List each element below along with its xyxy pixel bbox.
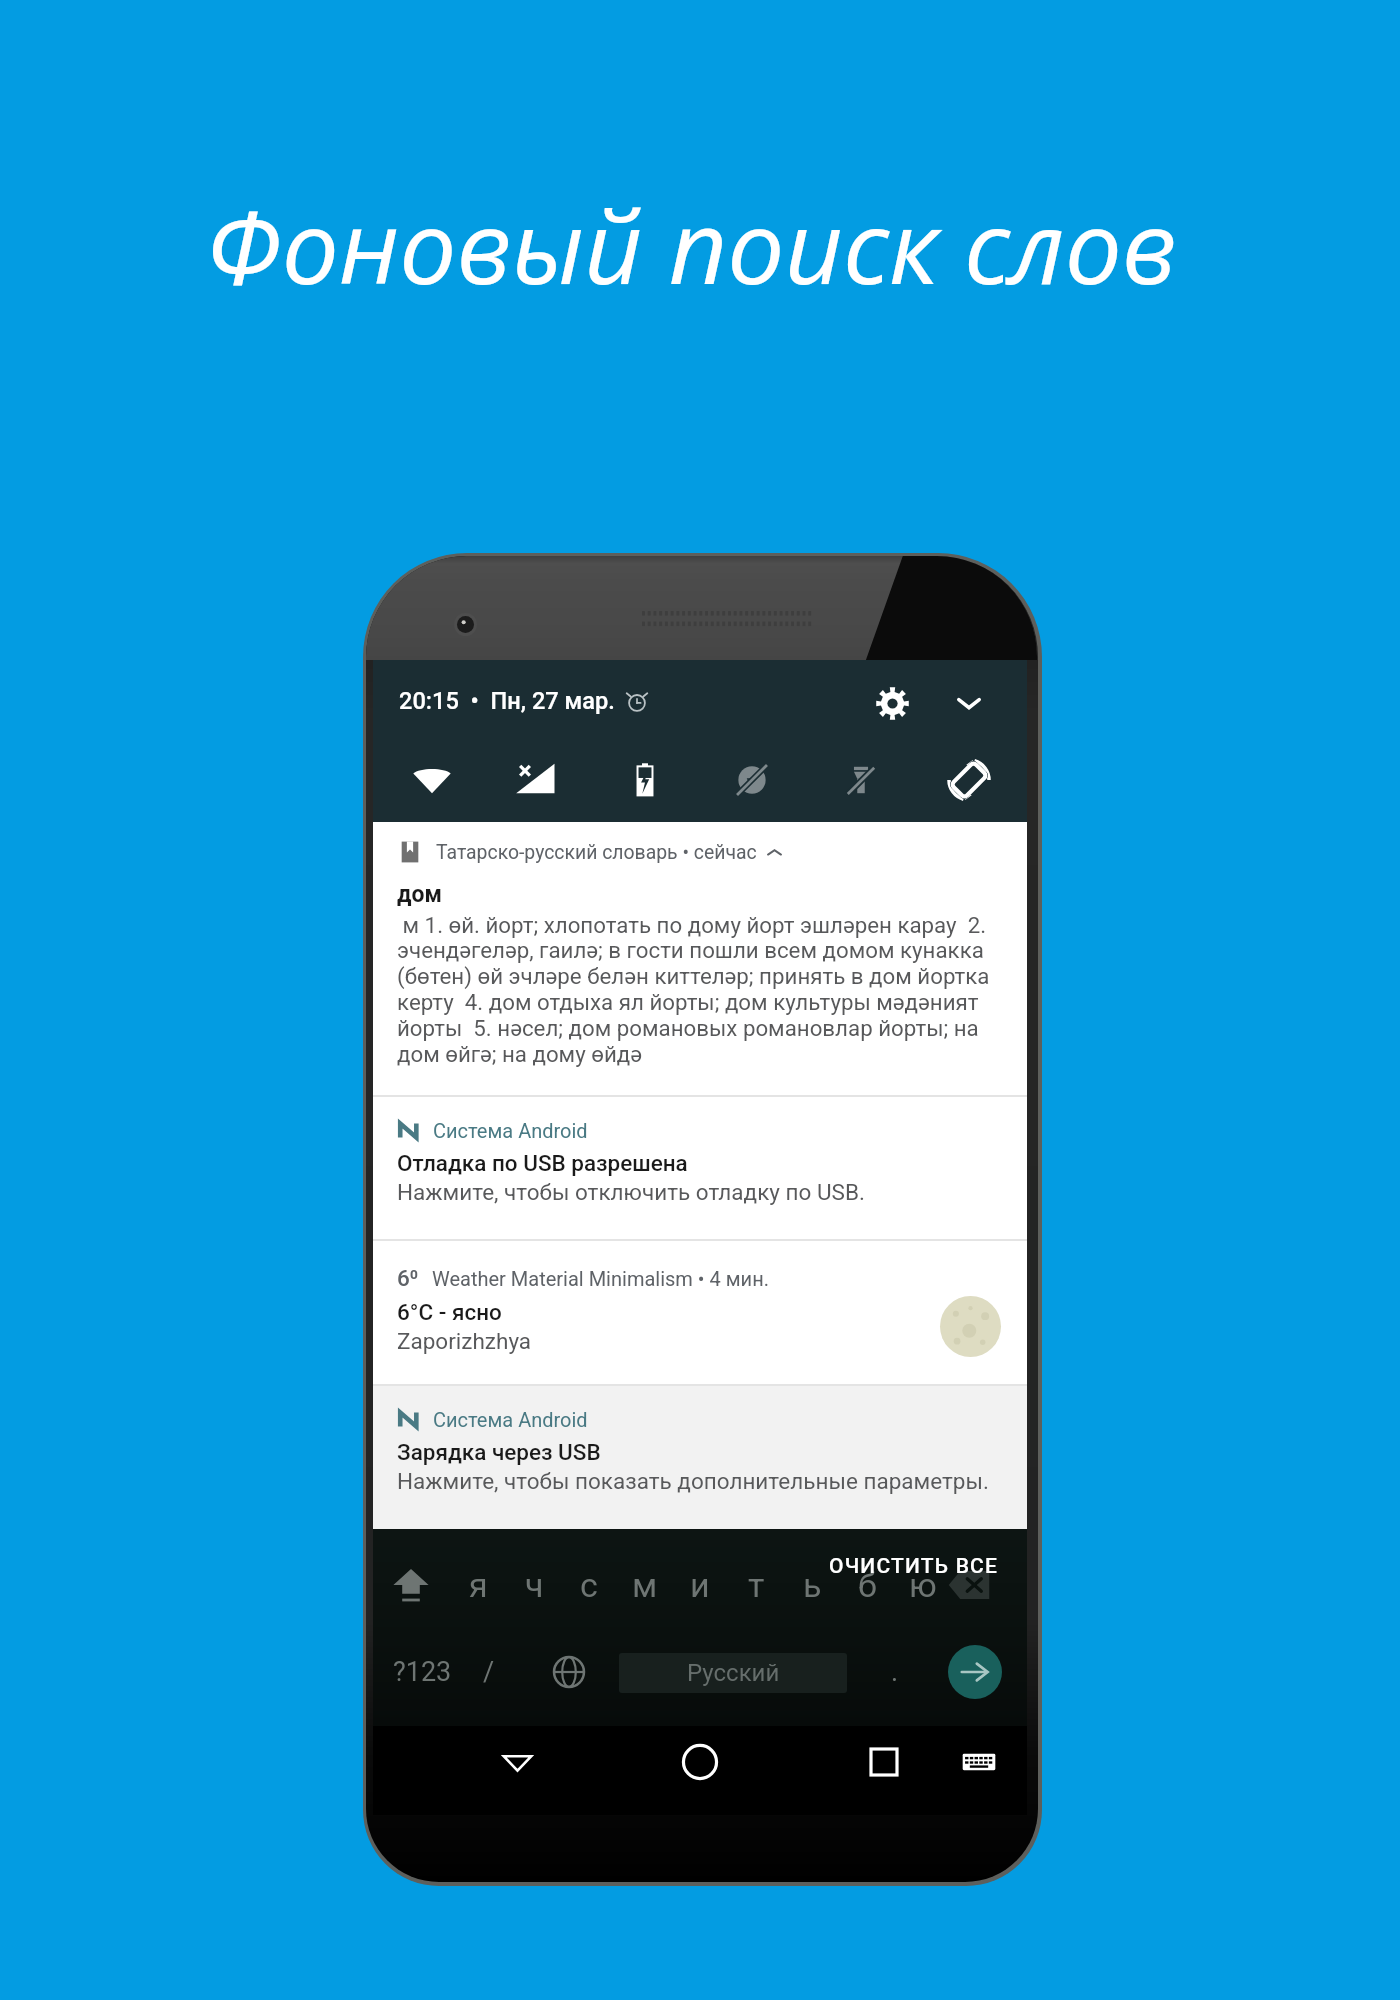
button[interactable]: Do not disturb [724, 752, 780, 808]
staticText: с [580, 1565, 598, 1605]
button[interactable]: ю [897, 1559, 949, 1611]
staticText: Zaporizhzhya [397, 1328, 532, 1354]
button[interactable]: ь [786, 1559, 838, 1611]
button[interactable]: с [563, 1559, 615, 1611]
staticText: 20:15 • Пн, 27 мар. [399, 687, 615, 715]
staticText: . [891, 1656, 899, 1688]
button[interactable]: Keyboard [951, 1734, 1007, 1790]
button[interactable]: и [674, 1559, 726, 1611]
button[interactable]: Back [487, 1732, 547, 1792]
button[interactable]: м [619, 1559, 671, 1611]
staticText: Нажмите, чтобы отключить отладку по USB. [397, 1179, 865, 1205]
staticText: Отладка по USB разрешена [397, 1150, 688, 1176]
staticText: м 1. өй. йорт; хлопотать по дому йорт эш… [397, 912, 1003, 1068]
button[interactable]: Enter [948, 1645, 1002, 1699]
button[interactable]: Backspace [943, 1559, 995, 1611]
button[interactable]: Wi-Fi [404, 752, 460, 808]
button[interactable]: ?123 [387, 1647, 457, 1697]
staticText: Зарядка через USB [397, 1439, 601, 1465]
staticText: Система Android [433, 1119, 588, 1142]
button[interactable]: Система Android [373, 1097, 1027, 1239]
button[interactable]: ОЧИСТИТЬ ВСЕ [813, 1549, 999, 1583]
button[interactable]: Татарско-русский словарь • сейчас [373, 822, 1027, 1095]
button[interactable]: Auto rotate [941, 752, 997, 808]
staticText: Русский [687, 1659, 780, 1687]
button[interactable]: я [452, 1559, 504, 1611]
staticText: ОЧИСТИТЬ ВСЕ [829, 1554, 999, 1579]
button[interactable]: Система Android [373, 1386, 1027, 1529]
button[interactable]: Русский [619, 1653, 847, 1693]
staticText: дом [397, 881, 442, 908]
button[interactable]: Battery [617, 752, 673, 808]
button[interactable]: 6⁰ [373, 1241, 1027, 1384]
button[interactable]: Switch language [544, 1647, 594, 1697]
button[interactable]: б [841, 1559, 893, 1611]
button[interactable]: ч [508, 1559, 560, 1611]
staticText: Фоновый поиск слов [0, 176, 1391, 314]
staticText: 6°C - ясно [397, 1299, 502, 1325]
staticText: м [632, 1565, 658, 1605]
staticText: ?123 [393, 1656, 452, 1688]
staticText: т [748, 1565, 765, 1605]
staticText: и [690, 1565, 710, 1605]
button[interactable]: Recents [854, 1732, 914, 1792]
button[interactable]: Collapse [947, 681, 991, 725]
button[interactable]: Shift [385, 1559, 437, 1611]
staticText: Нажмите, чтобы показать дополнительные п… [397, 1468, 989, 1494]
button[interactable]: / [467, 1647, 511, 1697]
button[interactable]: Mobile signal [508, 752, 564, 808]
staticText: ч [525, 1565, 544, 1605]
button[interactable]: Home [670, 1732, 730, 1792]
staticText: Татарско-русский словарь • сейчас [436, 841, 757, 864]
staticText: Система Android [433, 1408, 588, 1431]
button[interactable]: Settings [870, 681, 914, 725]
staticText: б [858, 1565, 877, 1605]
staticText: / [483, 1656, 495, 1688]
staticText: я [469, 1565, 488, 1605]
button[interactable]: т [730, 1559, 782, 1611]
staticText: 6⁰ [397, 1265, 419, 1291]
staticText: ю [909, 1565, 937, 1605]
button[interactable]: . [873, 1647, 917, 1697]
button[interactable]: Flashlight [833, 752, 889, 808]
staticText: ь [803, 1565, 822, 1605]
staticText: Weather Material Minimalism • 4 мин. [432, 1267, 769, 1290]
